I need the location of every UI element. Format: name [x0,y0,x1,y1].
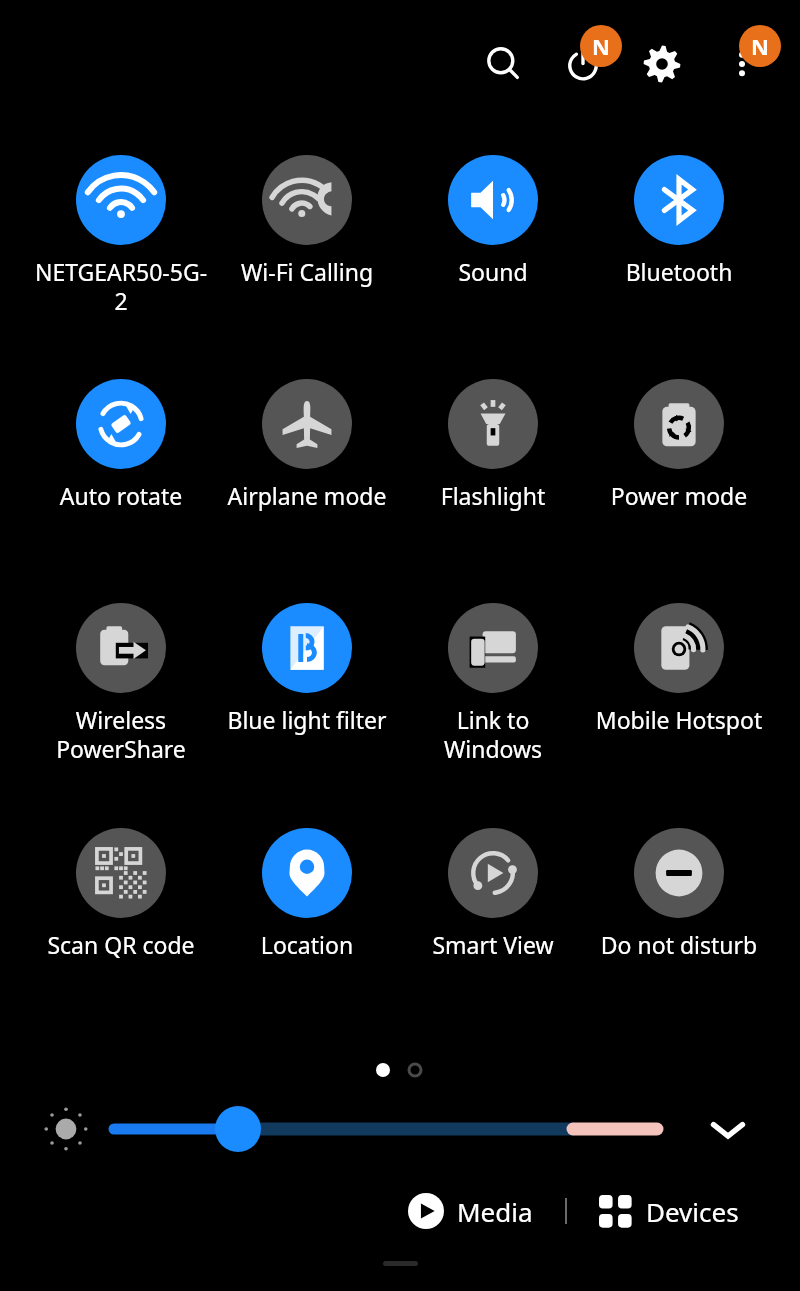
button[interactable]: Media [400,1193,541,1229]
button[interactable]: Airplane mode [217,379,397,547]
staticText: Mobile Hotspot [591,704,767,735]
button[interactable]: Brightness [36,1099,96,1159]
staticText: Smart View [405,929,581,960]
button[interactable]: Smart View [403,828,583,996]
button[interactable]: Location [217,828,397,996]
button[interactable]: Sound [403,155,583,323]
button[interactable]: Scan QR code [31,828,211,996]
button[interactable]: Do not disturb [589,828,769,996]
button[interactable]: Expand [698,1100,758,1160]
staticText: NETGEAR50-5G-2 [33,256,209,317]
staticText: Blue light filter [219,704,395,735]
button[interactable]: Wireless PowerShare [31,603,211,771]
staticText: Wi-Fi Calling [219,256,395,287]
button[interactable]: Mobile Hotspot [589,603,769,771]
staticText: Auto rotate [33,480,209,511]
button[interactable]: Search [472,32,536,96]
staticText: Wireless PowerShare [33,704,209,765]
button[interactable]: Flashlight [403,379,583,547]
button[interactable] [100,1100,690,1158]
button[interactable]: Auto rotate [31,379,211,547]
button[interactable]: Wi-Fi Calling [217,155,397,323]
staticText: Media [457,1194,533,1229]
staticText: Scan QR code [33,929,209,960]
staticText: N [751,31,769,61]
button[interactable]: More options [710,32,774,96]
staticText: Airplane mode [219,480,395,511]
staticText: Devices [646,1194,739,1229]
button[interactable]: Settings [630,32,694,96]
staticText: Link to Windows [405,704,581,765]
staticText: Power mode [591,480,767,511]
staticText: Location [219,929,395,960]
button[interactable]: Blue light filter [217,603,397,771]
button[interactable]: Devices [591,1194,747,1229]
staticText: Sound [405,256,581,287]
button[interactable]: Bluetooth [589,155,769,323]
staticText: Bluetooth [591,256,767,287]
button[interactable]: NETGEAR50-5G-2 [31,155,211,323]
staticText: N [592,31,610,61]
button[interactable]: Link to Windows [403,603,583,771]
staticText: Flashlight [405,480,581,511]
button[interactable]: Power off [551,32,615,96]
button[interactable]: Power mode [589,379,769,547]
staticText: Do not disturb [591,929,767,960]
